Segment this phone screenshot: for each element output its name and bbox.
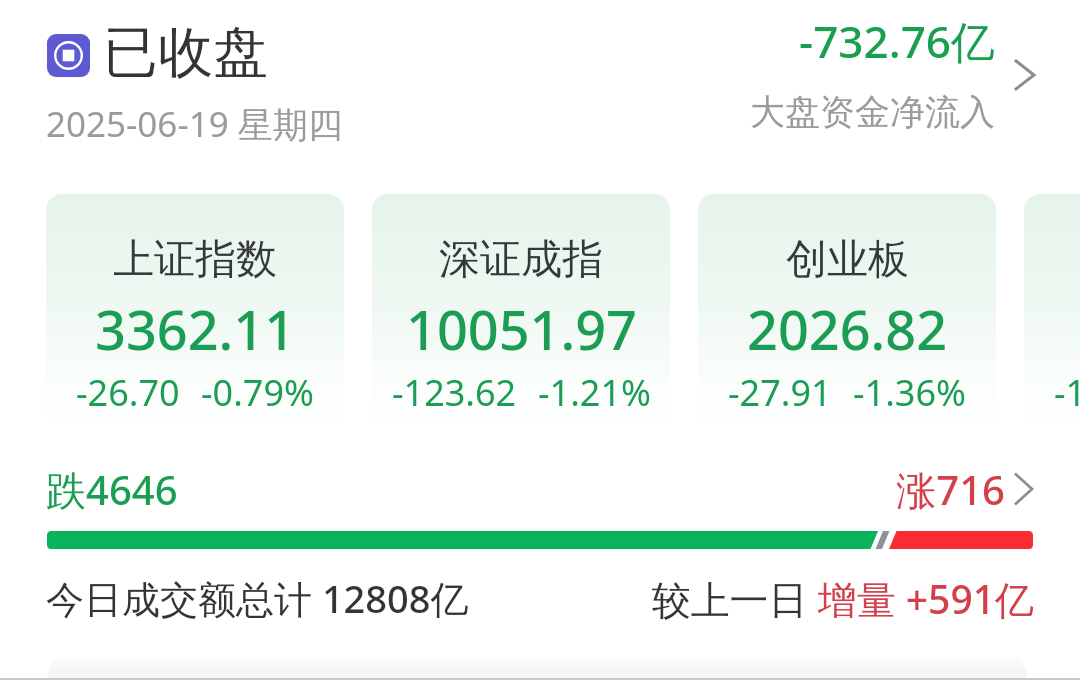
button[interactable]: 深证成指 <box>372 194 670 449</box>
staticText: 创业板 <box>786 234 909 286</box>
staticText: -1.21% <box>538 368 651 417</box>
staticText: -0.79% <box>201 368 314 417</box>
staticText: 3362.11 <box>95 292 296 366</box>
staticText: 2025-06-19 星期四 <box>46 100 343 148</box>
staticText: 大盘资金净流入 <box>700 90 995 134</box>
staticText: -18.46 <box>1054 368 1080 417</box>
staticText: -1.36% <box>853 368 966 417</box>
staticText: 2026.82 <box>747 292 948 366</box>
staticText: 上证指数 <box>113 234 277 286</box>
staticText: 已收盘 <box>103 18 268 87</box>
button[interactable]: 上证指数 <box>46 194 344 449</box>
staticText: -27.91 <box>728 368 832 417</box>
staticText: 跌4646 <box>46 462 178 517</box>
staticText: 10051.97 <box>406 292 637 366</box>
staticText: 涨716 <box>700 462 1005 517</box>
staticText: 深证成指 <box>439 234 603 286</box>
button[interactable]: 已收盘 <box>47 21 268 90</box>
button[interactable]: -732.76亿 <box>700 11 995 71</box>
button[interactable]: 涨716 <box>700 462 1005 517</box>
staticText: 今日成交额总计 12808亿 <box>46 572 469 624</box>
staticText: -732.76亿 <box>700 11 995 71</box>
button[interactable]: 创业板 <box>698 194 996 449</box>
button[interactable]: 查看大盘资金净流入详情 <box>1004 55 1046 95</box>
button[interactable]: 科创50 <box>1024 194 1080 449</box>
staticText: -26.70 <box>76 368 180 417</box>
button[interactable]: 查看涨跌家数详情 <box>1006 467 1042 511</box>
button[interactable] <box>48 656 1027 680</box>
staticText: 较上一日 增量 +591亿 <box>610 572 1034 625</box>
staticText: -123.62 <box>392 368 517 417</box>
